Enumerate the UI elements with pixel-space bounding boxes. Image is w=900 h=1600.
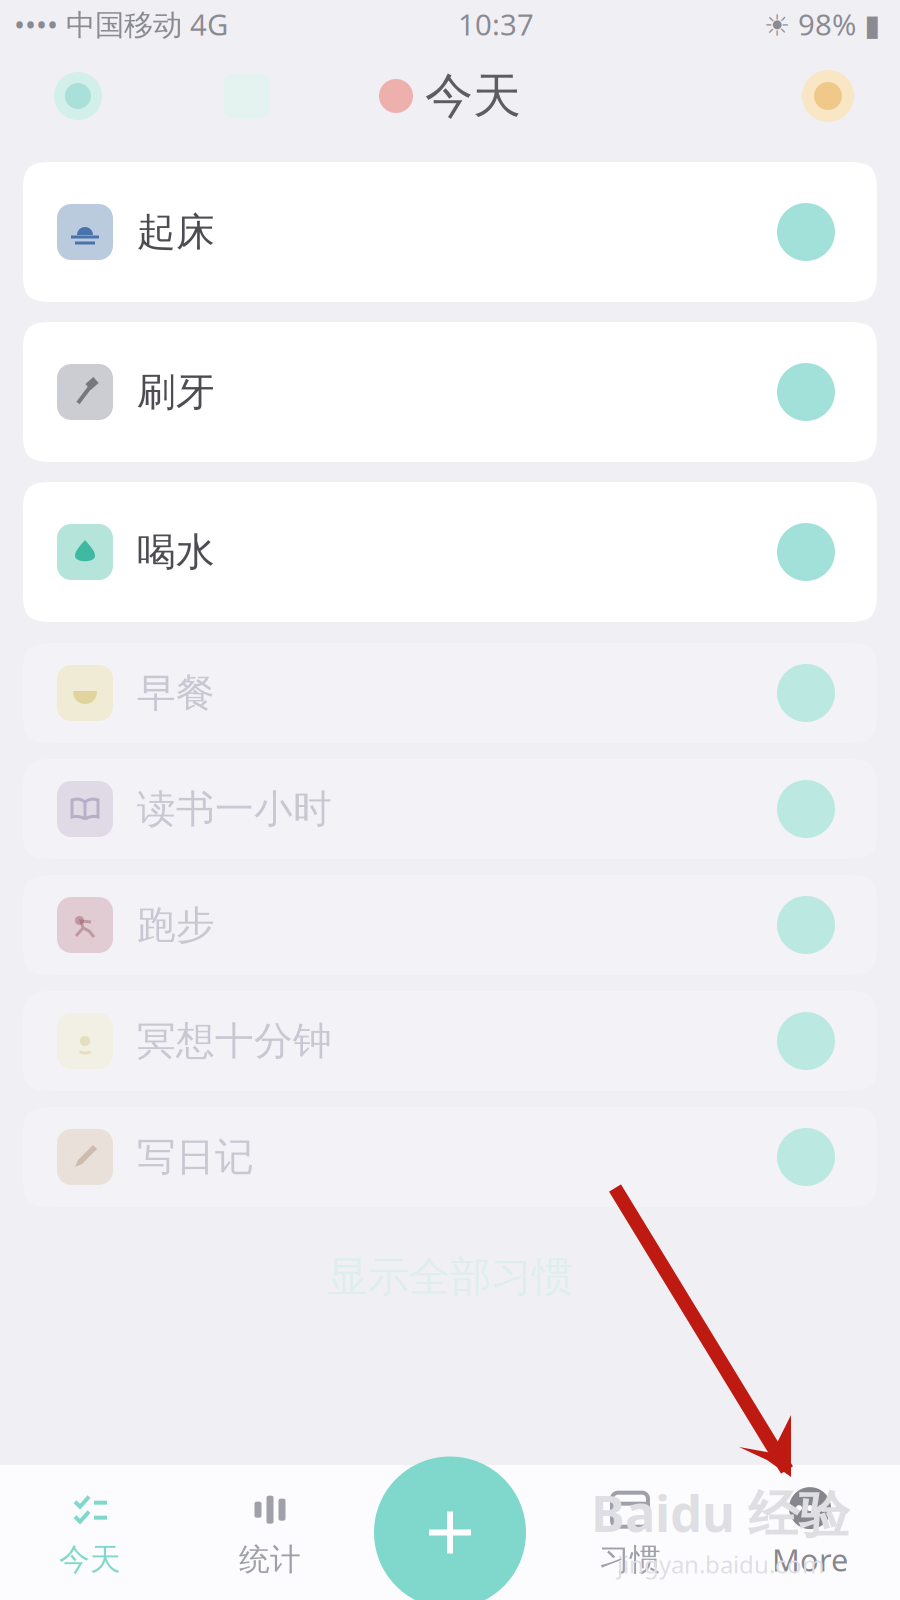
staticText: Baidu 经验 [591,1479,850,1546]
button[interactable]: Streak [38,59,118,133]
button[interactable]: 今天 [0,1465,180,1600]
button[interactable]: Profile [788,59,868,133]
staticText: More [772,1539,848,1580]
staticText: 今天 [59,1541,121,1578]
staticText: ☀ 98% ▮ [764,4,880,43]
staticText: jingyan.baidu.com [617,1548,824,1580]
staticText: 早餐 [137,669,215,717]
button[interactable]: 喝水 [23,482,877,622]
button[interactable]: 冥想十分钟 [23,991,877,1091]
button[interactable]: 读书一小时 [23,759,877,859]
button[interactable]: 习惯 [540,1465,720,1600]
button[interactable]: 跑步 [23,875,877,975]
button[interactable]: 起床 [23,162,877,302]
staticText: 统计 [239,1541,301,1578]
staticText: 喝水 [137,528,215,576]
staticText: 冥想十分钟 [137,1017,332,1065]
button[interactable]: 早餐 [23,643,877,743]
staticText: 写日记 [137,1133,254,1181]
button[interactable]: 统计 [180,1465,360,1600]
button[interactable]: 刷牙 [23,322,877,462]
button[interactable]: Calendar [204,59,290,133]
button[interactable]: 写日记 [23,1107,877,1207]
staticText: 习惯 [599,1541,661,1578]
staticText: •••• 中国移动 4G [14,4,228,43]
staticText: 10:37 [458,4,534,43]
staticText: 刷牙 [137,368,215,416]
staticText: 跑步 [137,901,215,949]
staticText: 今天 [425,66,521,125]
button[interactable]: Add habit [374,1456,526,1600]
staticText: 起床 [137,208,215,256]
button[interactable]: 显示全部习惯 [285,1251,615,1303]
staticText: 显示全部习惯 [327,1252,573,1302]
staticText: 读书一小时 [137,785,332,833]
button[interactable]: More [720,1465,900,1600]
